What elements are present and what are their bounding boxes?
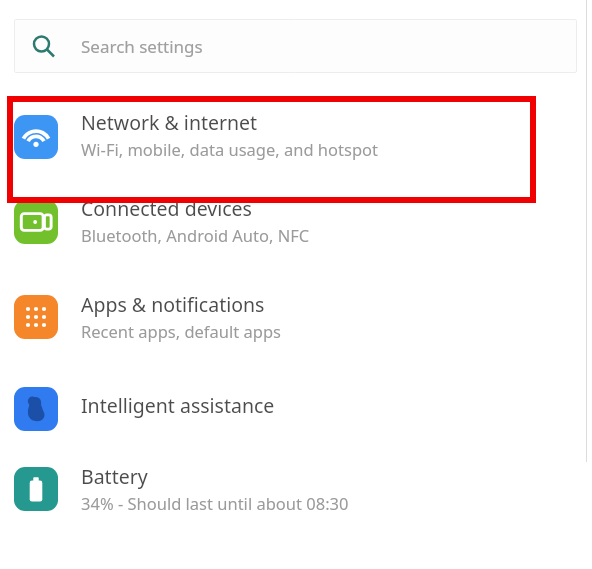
staticText: 34% - Should last until about 08:30 bbox=[81, 492, 349, 514]
staticText: Bluetooth, Android Auto, NFC bbox=[81, 224, 310, 246]
staticText: Apps & notifications bbox=[81, 291, 265, 318]
button[interactable]: Intelligent assistance bbox=[0, 383, 592, 463]
staticText: Network & internet bbox=[81, 109, 258, 136]
staticText: Connected devices bbox=[81, 195, 252, 222]
staticText: Wi-Fi, mobile, data usage, and hotspot bbox=[81, 138, 378, 160]
button[interactable]: Search settings bbox=[14, 19, 577, 73]
staticText: Battery bbox=[81, 463, 148, 490]
staticText: Search settings bbox=[81, 35, 203, 58]
button[interactable]: Connected devices bbox=[0, 195, 592, 291]
button[interactable]: Battery bbox=[0, 463, 592, 553]
button[interactable]: Network & internet bbox=[0, 97, 592, 195]
button[interactable]: Apps & notifications bbox=[0, 291, 592, 383]
staticText: Recent apps, default apps bbox=[81, 320, 281, 342]
staticText: Intelligent assistance bbox=[81, 392, 275, 419]
